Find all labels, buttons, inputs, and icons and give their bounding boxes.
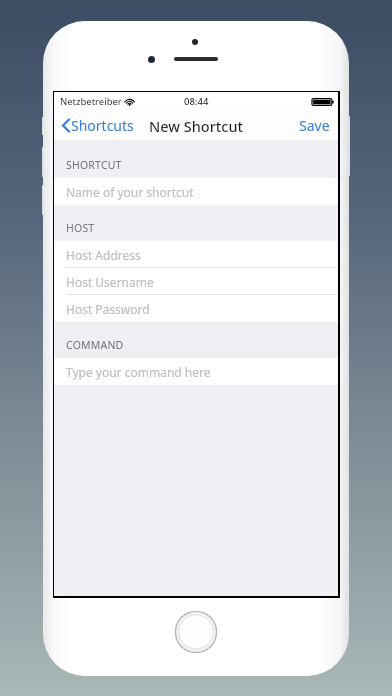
staticText: Host Address [66, 247, 141, 263]
staticText: Name of your shortcut [66, 184, 194, 200]
staticText: COMMAND [66, 338, 124, 352]
staticText: Host Password [66, 301, 150, 317]
button[interactable]: Host Username [54, 268, 338, 295]
button[interactable]: Host Password [54, 295, 338, 322]
button[interactable]: Save [291, 112, 338, 139]
staticText: Shortcuts [71, 116, 134, 135]
button[interactable]: Type your command here [54, 358, 338, 385]
other: Home [174, 610, 218, 654]
staticText: Save [299, 116, 330, 135]
staticText: HOST [66, 221, 95, 235]
staticText: Host Username [66, 274, 154, 290]
staticText: Netzbetreiber [60, 95, 122, 108]
staticText: 08:44 [184, 95, 209, 108]
button[interactable]: Shortcuts [54, 113, 140, 138]
staticText: Type your command here [66, 364, 211, 380]
button[interactable]: Name of your shortcut [54, 178, 338, 205]
button[interactable]: Host Address [54, 241, 338, 268]
staticText: SHORTCUT [66, 158, 122, 172]
staticText: New Shortcut [149, 116, 244, 136]
